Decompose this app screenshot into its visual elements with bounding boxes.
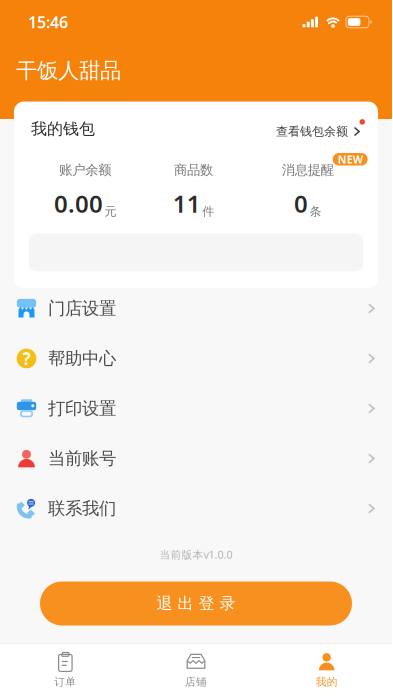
staticText: 15:46 <box>28 11 68 33</box>
staticText: 干饭人甜品 <box>16 58 121 84</box>
button[interactable]: 联系我们 <box>0 483 392 533</box>
staticText: 店铺 <box>185 675 207 688</box>
staticText: 订单 <box>54 675 76 688</box>
staticText: 打印设置 <box>48 398 116 419</box>
staticText: ? <box>22 347 30 370</box>
staticText: 退 出 登 录 <box>156 594 235 613</box>
staticText: 查看钱包余额 <box>276 124 348 139</box>
staticText: 元 <box>104 204 116 219</box>
staticText: 联系我们 <box>48 498 116 519</box>
staticText: 我的 <box>316 675 338 688</box>
staticText: 件 <box>202 204 214 219</box>
button[interactable]: 打印设置 <box>0 383 392 433</box>
button[interactable]: 当前账号 <box>0 433 392 483</box>
staticText: 11 <box>173 188 201 219</box>
staticText: 帮助中心 <box>48 348 116 369</box>
staticText: 条 <box>309 204 321 219</box>
button[interactable]: 订单 <box>0 644 131 696</box>
staticText: NEW <box>338 152 363 166</box>
staticText: 消息提醒 <box>282 162 334 178</box>
button[interactable]: 查看钱包余额 <box>276 119 365 139</box>
button[interactable]: 退 出 登 录 <box>40 581 352 625</box>
button[interactable]: 店铺 <box>131 644 261 696</box>
staticText: 0 <box>294 188 308 219</box>
staticText: 当前账号 <box>48 448 116 469</box>
staticText: 0.00 <box>54 188 103 219</box>
button[interactable]: 门店设置 <box>0 283 392 333</box>
staticText: 门店设置 <box>48 298 116 319</box>
staticText: 当前版本v1.0.0 <box>159 547 232 562</box>
staticText: 我的钱包 <box>31 119 95 139</box>
button[interactable]: ? <box>0 333 392 383</box>
staticText: 账户余额 <box>59 162 111 178</box>
button[interactable]: 我的 <box>261 644 392 696</box>
staticText: 商品数 <box>174 162 213 178</box>
